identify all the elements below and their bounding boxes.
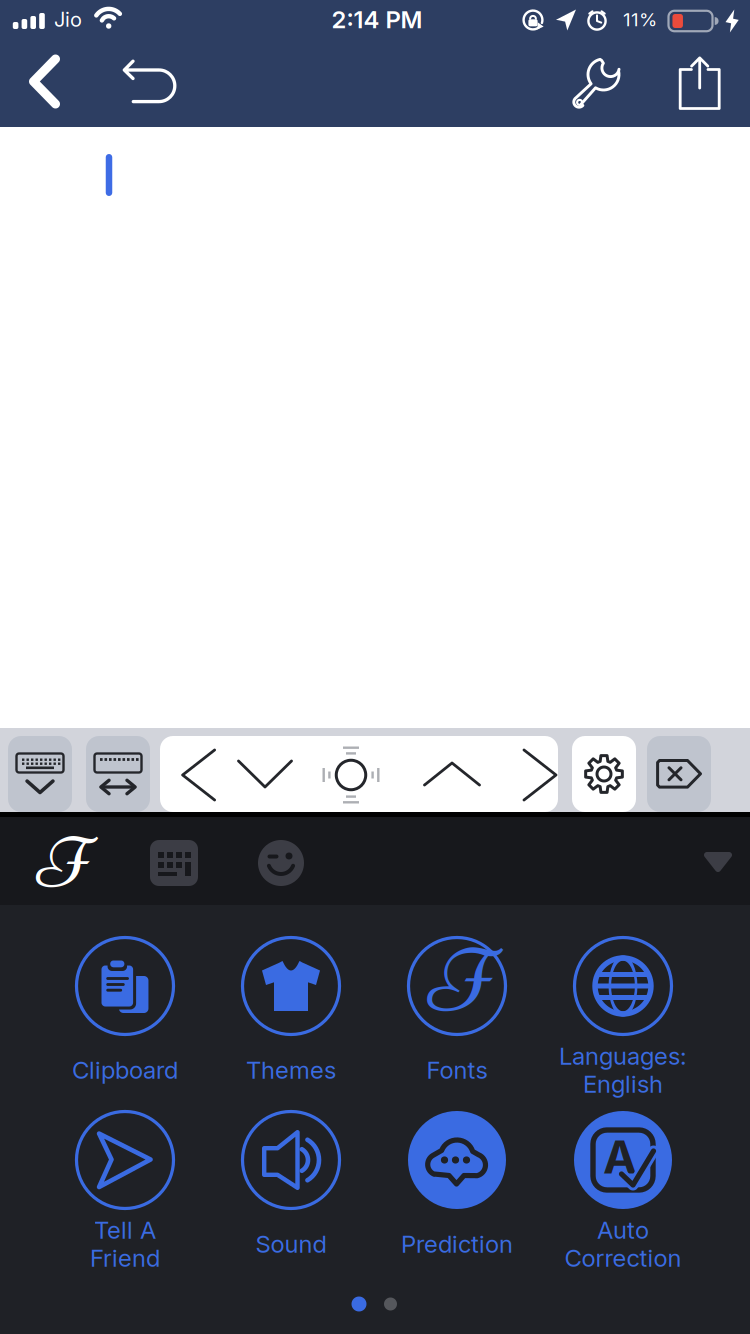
staticText: 2:14 PM bbox=[331, 5, 422, 34]
button[interactable]: Move cursor right bbox=[517, 744, 563, 806]
button[interactable]: Undo bbox=[118, 53, 182, 109]
staticText: F bbox=[37, 819, 87, 907]
button[interactable]: Tell A bbox=[42, 1109, 208, 1299]
button[interactable]: Move cursor up bbox=[418, 750, 486, 798]
button[interactable]: Delete bbox=[647, 736, 711, 812]
button[interactable]: Languages: bbox=[540, 935, 706, 1125]
button[interactable]: Sound bbox=[208, 1109, 374, 1299]
button[interactable]: Tools bbox=[566, 53, 626, 113]
button[interactable]: A bbox=[540, 1109, 706, 1299]
button[interactable]: Fonts home bbox=[27, 825, 97, 901]
button[interactable]: Hide panel bbox=[696, 844, 740, 880]
staticText: Friend bbox=[90, 1244, 160, 1272]
button[interactable]: Cursor control bbox=[321, 746, 381, 804]
staticText: Themes bbox=[246, 1056, 336, 1084]
staticText: English bbox=[583, 1070, 663, 1098]
staticText: Tell A bbox=[94, 1216, 156, 1244]
button[interactable]: Prediction bbox=[374, 1109, 540, 1299]
staticText: F bbox=[428, 928, 489, 1034]
staticText: A bbox=[603, 1130, 637, 1184]
button[interactable]: Share bbox=[673, 53, 727, 113]
button[interactable]: Clipboard bbox=[42, 935, 208, 1125]
staticText: Correction bbox=[564, 1244, 681, 1272]
staticText: Prediction bbox=[401, 1230, 513, 1258]
button[interactable]: Resize keyboard bbox=[86, 736, 150, 812]
staticText: Clipboard bbox=[72, 1056, 178, 1084]
staticText: Auto bbox=[597, 1216, 649, 1244]
button[interactable]: F bbox=[374, 935, 540, 1125]
button[interactable]: Dismiss keyboard bbox=[8, 736, 72, 812]
button[interactable]: Keyboard bbox=[144, 833, 204, 893]
staticText: 11% bbox=[623, 8, 657, 30]
staticText: Jio bbox=[54, 8, 82, 31]
button[interactable]: Move cursor left bbox=[176, 744, 222, 806]
button[interactable]: Settings bbox=[572, 736, 636, 812]
staticText: Languages: bbox=[559, 1042, 687, 1070]
staticText: Fonts bbox=[426, 1056, 487, 1084]
button[interactable]: Back bbox=[17, 50, 73, 112]
button[interactable]: Themes bbox=[208, 935, 374, 1125]
staticText: Sound bbox=[255, 1230, 326, 1258]
button[interactable]: Move cursor down bbox=[232, 750, 298, 798]
button[interactable]: Emoji bbox=[251, 833, 311, 893]
